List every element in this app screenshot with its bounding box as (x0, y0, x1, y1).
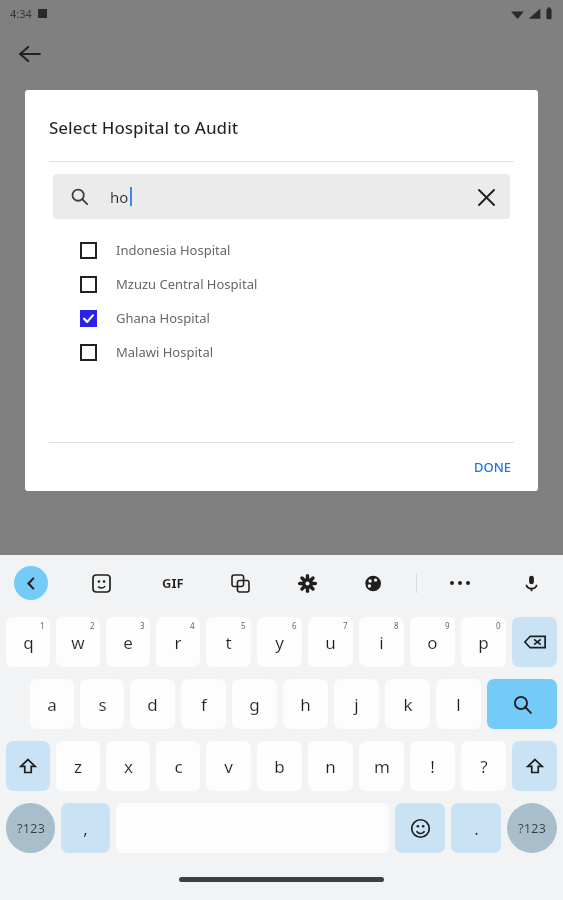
button[interactable]: ?123 (6, 803, 55, 853)
button[interactable]: , (61, 803, 110, 853)
staticText: . (474, 817, 479, 840)
staticText: GIF (162, 574, 184, 592)
button[interactable]: . (451, 803, 501, 853)
button[interactable]: o (410, 617, 455, 667)
button[interactable]: s (80, 679, 124, 729)
button[interactable]: y (257, 617, 302, 667)
staticText: 2 (90, 620, 95, 631)
button[interactable]: w (56, 617, 100, 667)
staticText: q (23, 631, 34, 654)
staticText: 8 (394, 620, 399, 631)
button[interactable]: l (436, 679, 481, 729)
staticText: Malawi Hospital (116, 343, 214, 361)
button[interactable]: v (206, 741, 251, 791)
button[interactable]: ! (410, 741, 455, 791)
staticText: y (275, 631, 284, 654)
staticText: 3 (140, 620, 145, 631)
button[interactable]: m (359, 741, 404, 791)
button[interactable]: e (106, 617, 150, 667)
button[interactable]: x (106, 741, 150, 791)
staticText: l (456, 693, 461, 716)
button[interactable]: z (56, 741, 100, 791)
staticText: z (74, 755, 82, 778)
button[interactable]: DONE (460, 450, 526, 484)
staticText: Ghana Hospital (116, 309, 210, 327)
staticText: k (403, 693, 413, 716)
staticText: 5 (241, 620, 246, 631)
button[interactable]: g (232, 679, 277, 729)
staticText: r (174, 631, 182, 654)
button[interactable]: Clear search (466, 177, 506, 217)
button[interactable]: Search (487, 679, 557, 729)
button[interactable]: c (156, 741, 200, 791)
button[interactable]: GIF (153, 566, 193, 600)
staticText: v (224, 755, 233, 778)
button[interactable]: Emoji (395, 803, 445, 853)
staticText: ?123 (17, 819, 45, 837)
button[interactable]: k (385, 679, 430, 729)
staticText: s (98, 693, 107, 716)
button[interactable]: t (206, 617, 251, 667)
button[interactable]: p (461, 617, 506, 667)
button[interactable]: Stickers (84, 566, 118, 600)
button[interactable]: d (130, 679, 175, 729)
staticText: a (47, 693, 57, 716)
staticText: 7 (343, 620, 348, 631)
button[interactable]: Shift (512, 741, 557, 791)
button[interactable]: f (181, 679, 226, 729)
button[interactable]: ho (53, 174, 510, 219)
button[interactable]: h (283, 679, 328, 729)
button[interactable]: Theme (356, 566, 390, 600)
staticText: 6 (292, 620, 297, 631)
button[interactable]: u (308, 617, 353, 667)
staticText: DONE (474, 458, 512, 476)
button[interactable]: r (156, 617, 200, 667)
button[interactable]: Indonesia Hospital (25, 233, 538, 267)
button[interactable]: Translate (223, 566, 257, 600)
button[interactable]: Shift (6, 741, 50, 791)
staticText: 1 (40, 620, 45, 631)
button[interactable]: ? (461, 741, 506, 791)
button[interactable]: Back (14, 566, 48, 600)
staticText: u (325, 631, 336, 654)
button[interactable]: q (6, 617, 50, 667)
staticText: x (124, 755, 133, 778)
staticText: 9 (445, 620, 450, 631)
button[interactable]: j (334, 679, 379, 729)
staticText: Indonesia Hospital (116, 241, 231, 259)
staticText: 4:34 (10, 6, 32, 21)
button[interactable]: ?123 (507, 803, 557, 853)
staticText: o (427, 631, 438, 654)
staticText: p (478, 631, 489, 654)
button[interactable]: More options (443, 566, 477, 600)
button[interactable]: n (308, 741, 353, 791)
button[interactable]: Malawi Hospital (25, 335, 538, 369)
staticText: m (374, 755, 390, 778)
staticText: ho (110, 187, 129, 207)
button[interactable]: a (30, 679, 74, 729)
button[interactable]: Voice input (511, 563, 551, 603)
staticText: i (379, 631, 384, 654)
button[interactable]: Settings (290, 566, 324, 600)
staticText: t (225, 631, 232, 654)
staticText: c (174, 755, 183, 778)
staticText: 0 (496, 620, 501, 631)
staticText: ?123 (518, 819, 546, 837)
staticText: e (123, 631, 133, 654)
button[interactable]: Ghana Hospital (25, 301, 538, 335)
button[interactable]: Mzuzu Central Hospital (25, 267, 538, 301)
staticText: , (83, 817, 88, 840)
button[interactable]: Back (8, 32, 52, 76)
staticText: 4 (190, 620, 195, 631)
staticText: Mzuzu Central Hospital (116, 275, 258, 293)
staticText: d (147, 693, 158, 716)
button[interactable]: b (257, 741, 302, 791)
staticText: w (71, 631, 85, 654)
staticText: h (300, 693, 311, 716)
staticText: ? (480, 755, 488, 778)
button[interactable]: Backspace (512, 617, 557, 667)
staticText: n (325, 755, 336, 778)
button[interactable]: i (359, 617, 404, 667)
staticText: j (354, 693, 359, 716)
